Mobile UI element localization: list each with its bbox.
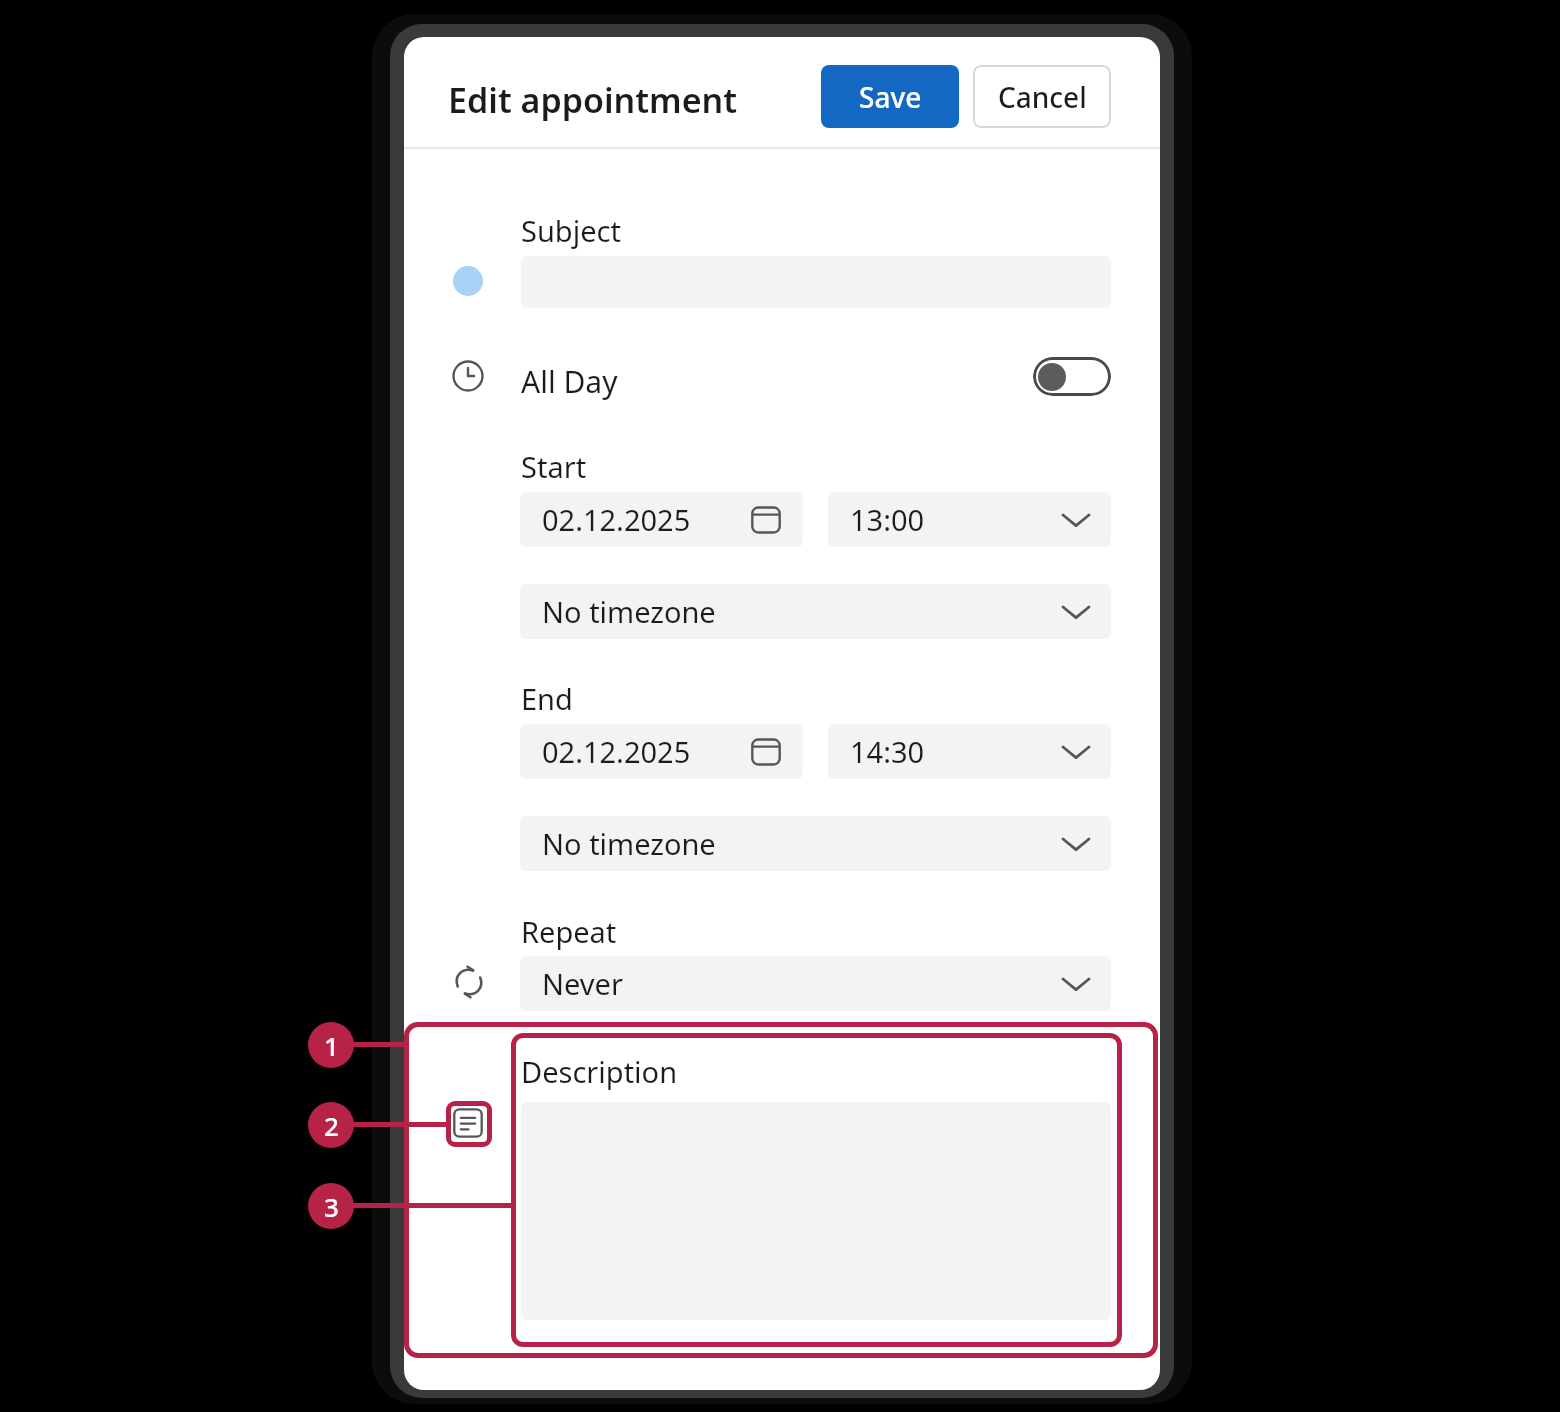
staticText: All Day	[521, 361, 618, 402]
staticText: Save	[859, 78, 922, 116]
staticText: Start	[521, 447, 587, 486]
button[interactable]: Save	[821, 65, 959, 128]
staticText: No timezone	[542, 824, 716, 863]
staticText: End	[521, 679, 573, 718]
staticText: No timezone	[542, 592, 716, 631]
button[interactable]: All Day toggle	[1033, 357, 1111, 396]
staticText: 02.12.2025	[542, 500, 691, 539]
button[interactable]: No timezone	[520, 584, 1111, 639]
staticText: Repeat	[521, 912, 617, 951]
staticText: Never	[542, 964, 623, 1003]
button[interactable]: 02.12.2025	[520, 492, 803, 547]
button[interactable]: Never	[520, 956, 1111, 1011]
staticText: Edit appointment	[448, 77, 738, 123]
staticText: Cancel	[998, 78, 1087, 116]
staticText: 1	[324, 1028, 339, 1063]
button[interactable]: 13:00	[828, 492, 1111, 547]
button[interactable]: 02.12.2025	[520, 724, 803, 779]
staticText: 3	[324, 1189, 339, 1224]
other: Description	[453, 1108, 483, 1138]
other: Time	[452, 360, 484, 392]
staticText: 2	[324, 1108, 339, 1143]
button[interactable]: No timezone	[520, 816, 1111, 871]
staticText: Subject	[521, 211, 621, 250]
staticText: 13:00	[850, 500, 925, 539]
button[interactable]: 14:30	[828, 724, 1111, 779]
button[interactable]: Cancel	[973, 65, 1111, 128]
other: Repeat	[452, 965, 486, 999]
staticText: 02.12.2025	[542, 732, 691, 771]
staticText: 14:30	[850, 732, 925, 771]
staticText: Description	[521, 1052, 678, 1091]
